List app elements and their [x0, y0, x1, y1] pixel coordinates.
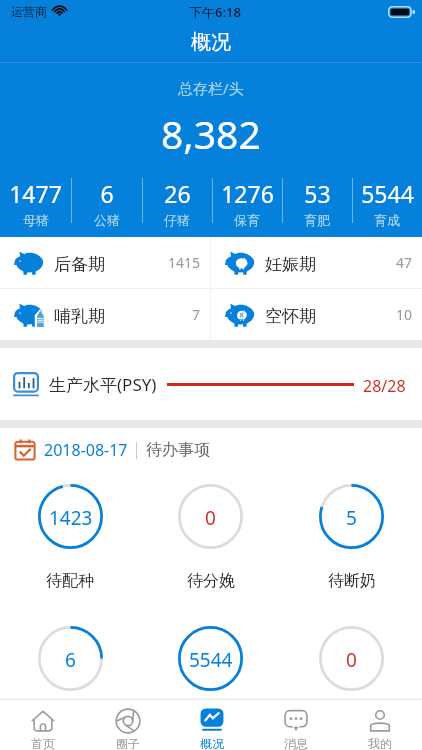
button[interactable]: 5: [281, 484, 422, 591]
staticText: 总存栏/头: [178, 78, 244, 98]
staticText: 哺乳期: [54, 306, 105, 327]
button[interactable]: 生产水平(PSY): [0, 348, 422, 420]
staticText: 53: [304, 178, 331, 209]
staticText: 6: [65, 647, 76, 673]
staticText: 育成: [374, 212, 400, 228]
staticText: 圈子: [116, 736, 140, 750]
button[interactable]: 首页: [0, 700, 85, 750]
button[interactable]: 哺乳期: [0, 289, 210, 340]
button[interactable]: 5544: [352, 167, 422, 234]
button[interactable]: 圈子: [85, 700, 170, 750]
staticText: 保育: [234, 212, 260, 228]
button[interactable]: 0: [281, 626, 422, 691]
staticText: 7: [192, 305, 201, 324]
staticText: 后备期: [54, 254, 105, 275]
staticText: 8,382: [161, 107, 261, 160]
button[interactable]: 1423: [0, 484, 140, 591]
staticText: 待断奶: [328, 571, 376, 591]
staticText: 妊娠期: [265, 254, 316, 275]
staticText: 2018-08-17: [44, 439, 128, 461]
staticText: 1415: [168, 253, 201, 272]
button[interactable]: 消息: [254, 700, 338, 750]
staticText: 育肥: [304, 212, 330, 228]
button[interactable]: 1276: [212, 167, 282, 234]
button[interactable]: 我的: [338, 700, 422, 750]
button[interactable]: 6: [71, 167, 142, 234]
staticText: 母猪: [23, 212, 49, 228]
staticText: 公猪: [94, 212, 120, 228]
staticText: 空怀期: [265, 306, 316, 327]
staticText: 0: [205, 505, 216, 531]
staticText: 运营商: [11, 4, 47, 19]
staticText: 概况: [200, 736, 224, 750]
staticText: 0: [346, 647, 357, 673]
staticText: 26: [164, 178, 191, 209]
staticText: 仔猪: [164, 212, 190, 228]
staticText: 47: [396, 253, 413, 272]
button[interactable]: 5544: [140, 626, 281, 691]
staticText: 5: [346, 505, 357, 531]
staticText: 待办事项: [146, 440, 210, 460]
staticText: 6: [100, 178, 114, 209]
staticText: 28/28: [363, 375, 406, 397]
staticText: 概况: [191, 30, 231, 55]
staticText: 10: [396, 305, 413, 324]
button[interactable]: 0: [140, 484, 281, 591]
button[interactable]: 妊娠期: [211, 237, 422, 288]
staticText: 我的: [368, 736, 392, 750]
staticText: 1477: [9, 178, 62, 209]
staticText: 1276: [221, 178, 274, 209]
staticText: 首页: [31, 736, 55, 750]
staticText: 生产水平(PSY): [49, 373, 157, 396]
button[interactable]: 概况: [170, 700, 254, 750]
staticText: 下午6:18: [189, 3, 241, 21]
button[interactable]: 6: [0, 626, 140, 691]
staticText: 5544: [189, 647, 233, 673]
staticText: 待分娩: [187, 571, 235, 591]
button[interactable]: 后备期: [0, 237, 210, 288]
staticText: 消息: [284, 736, 308, 750]
staticText: 待配种: [46, 571, 94, 591]
staticText: 5544: [361, 178, 414, 209]
button[interactable]: 26: [142, 167, 212, 234]
button[interactable]: 空怀期: [211, 289, 422, 340]
staticText: 1423: [49, 505, 93, 531]
button[interactable]: 1477: [0, 167, 71, 234]
button[interactable]: 53: [282, 167, 352, 234]
